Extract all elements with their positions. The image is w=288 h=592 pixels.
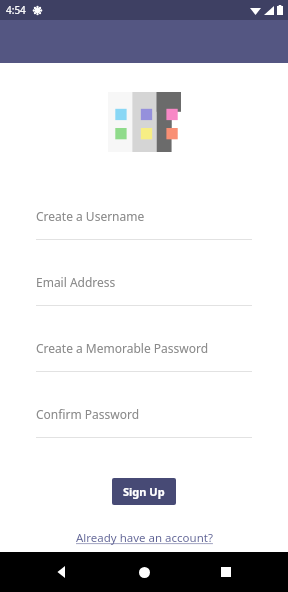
staticText: Create a Memorable Password [36, 340, 209, 356]
button[interactable]: Email Address [0, 262, 288, 328]
staticText: Email Address [36, 274, 116, 290]
button[interactable]: Already have an account? [72, 528, 217, 548]
button[interactable]: Create a Memorable Password [0, 328, 288, 394]
button[interactable]: Sign Up [112, 478, 176, 505]
button[interactable]: Home [124, 552, 164, 592]
staticText: 4:54 [6, 3, 26, 17]
staticText: Confirm Password [36, 406, 140, 422]
button[interactable]: Back [42, 552, 82, 592]
staticText: Sign Up [123, 484, 165, 499]
staticText: Already have an account? [76, 530, 213, 546]
button[interactable]: Create a Username [0, 196, 288, 262]
staticText: Create a Username [36, 208, 145, 224]
button[interactable]: Confirm Password [0, 394, 288, 460]
button[interactable]: Recent apps [206, 552, 246, 592]
